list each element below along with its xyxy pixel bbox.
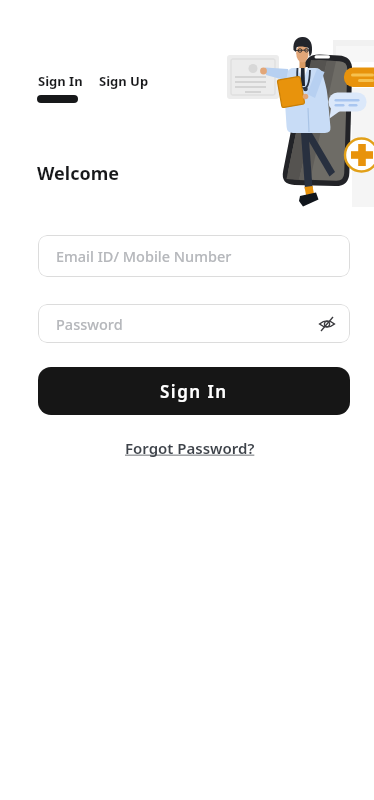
staticText: Password: [56, 314, 316, 334]
staticText: Email ID/ Mobile Number: [56, 246, 338, 266]
button[interactable]: Sign In: [38, 367, 350, 415]
button[interactable]: Sign Up: [99, 72, 149, 90]
staticText: Sign In: [160, 380, 228, 403]
staticText: Welcome: [37, 161, 119, 186]
button[interactable]: Forgot Password?: [125, 438, 255, 458]
button[interactable]: Password: [38, 304, 350, 343]
button[interactable]: [316, 313, 338, 335]
button[interactable]: Email ID/ Mobile Number: [38, 235, 350, 277]
button[interactable]: Sign In: [38, 72, 83, 90]
